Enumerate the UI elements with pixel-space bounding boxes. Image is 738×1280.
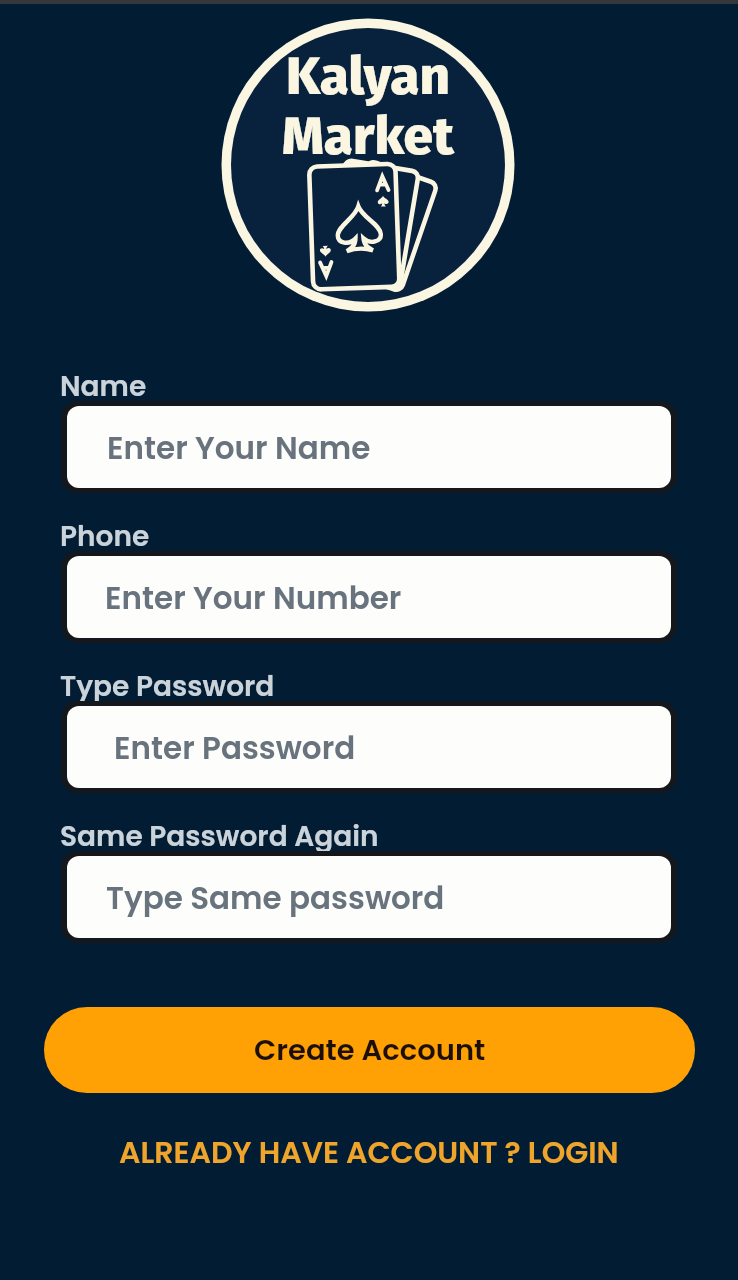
staticText: Enter Password [114,726,356,769]
staticText: Kalyan [286,44,450,108]
staticText: Enter Your Number [105,576,402,619]
staticText: ALREADY HAVE ACCOUNT ? LOGIN [119,1132,619,1174]
button[interactable]: Enter Your Number [67,556,671,638]
staticText: Name [60,367,147,406]
staticText: Same Password Again [60,817,379,856]
button[interactable]: Type Same password [67,856,671,938]
staticText: Create Account [254,1030,486,1071]
staticText: Enter Your Name [107,426,371,469]
button[interactable]: ALREADY HAVE ACCOUNT ? LOGIN [0,1131,738,1175]
staticText: Phone [60,517,150,556]
button[interactable]: Enter Your Name [67,406,671,488]
button[interactable]: Enter Password [67,706,671,788]
other: Kalyan Market cards logo [304,161,454,316]
staticText: Type Same password [106,876,445,919]
staticText: Market [282,104,454,168]
staticText: Type Password [60,667,275,706]
button[interactable]: Create Account [44,1007,695,1093]
